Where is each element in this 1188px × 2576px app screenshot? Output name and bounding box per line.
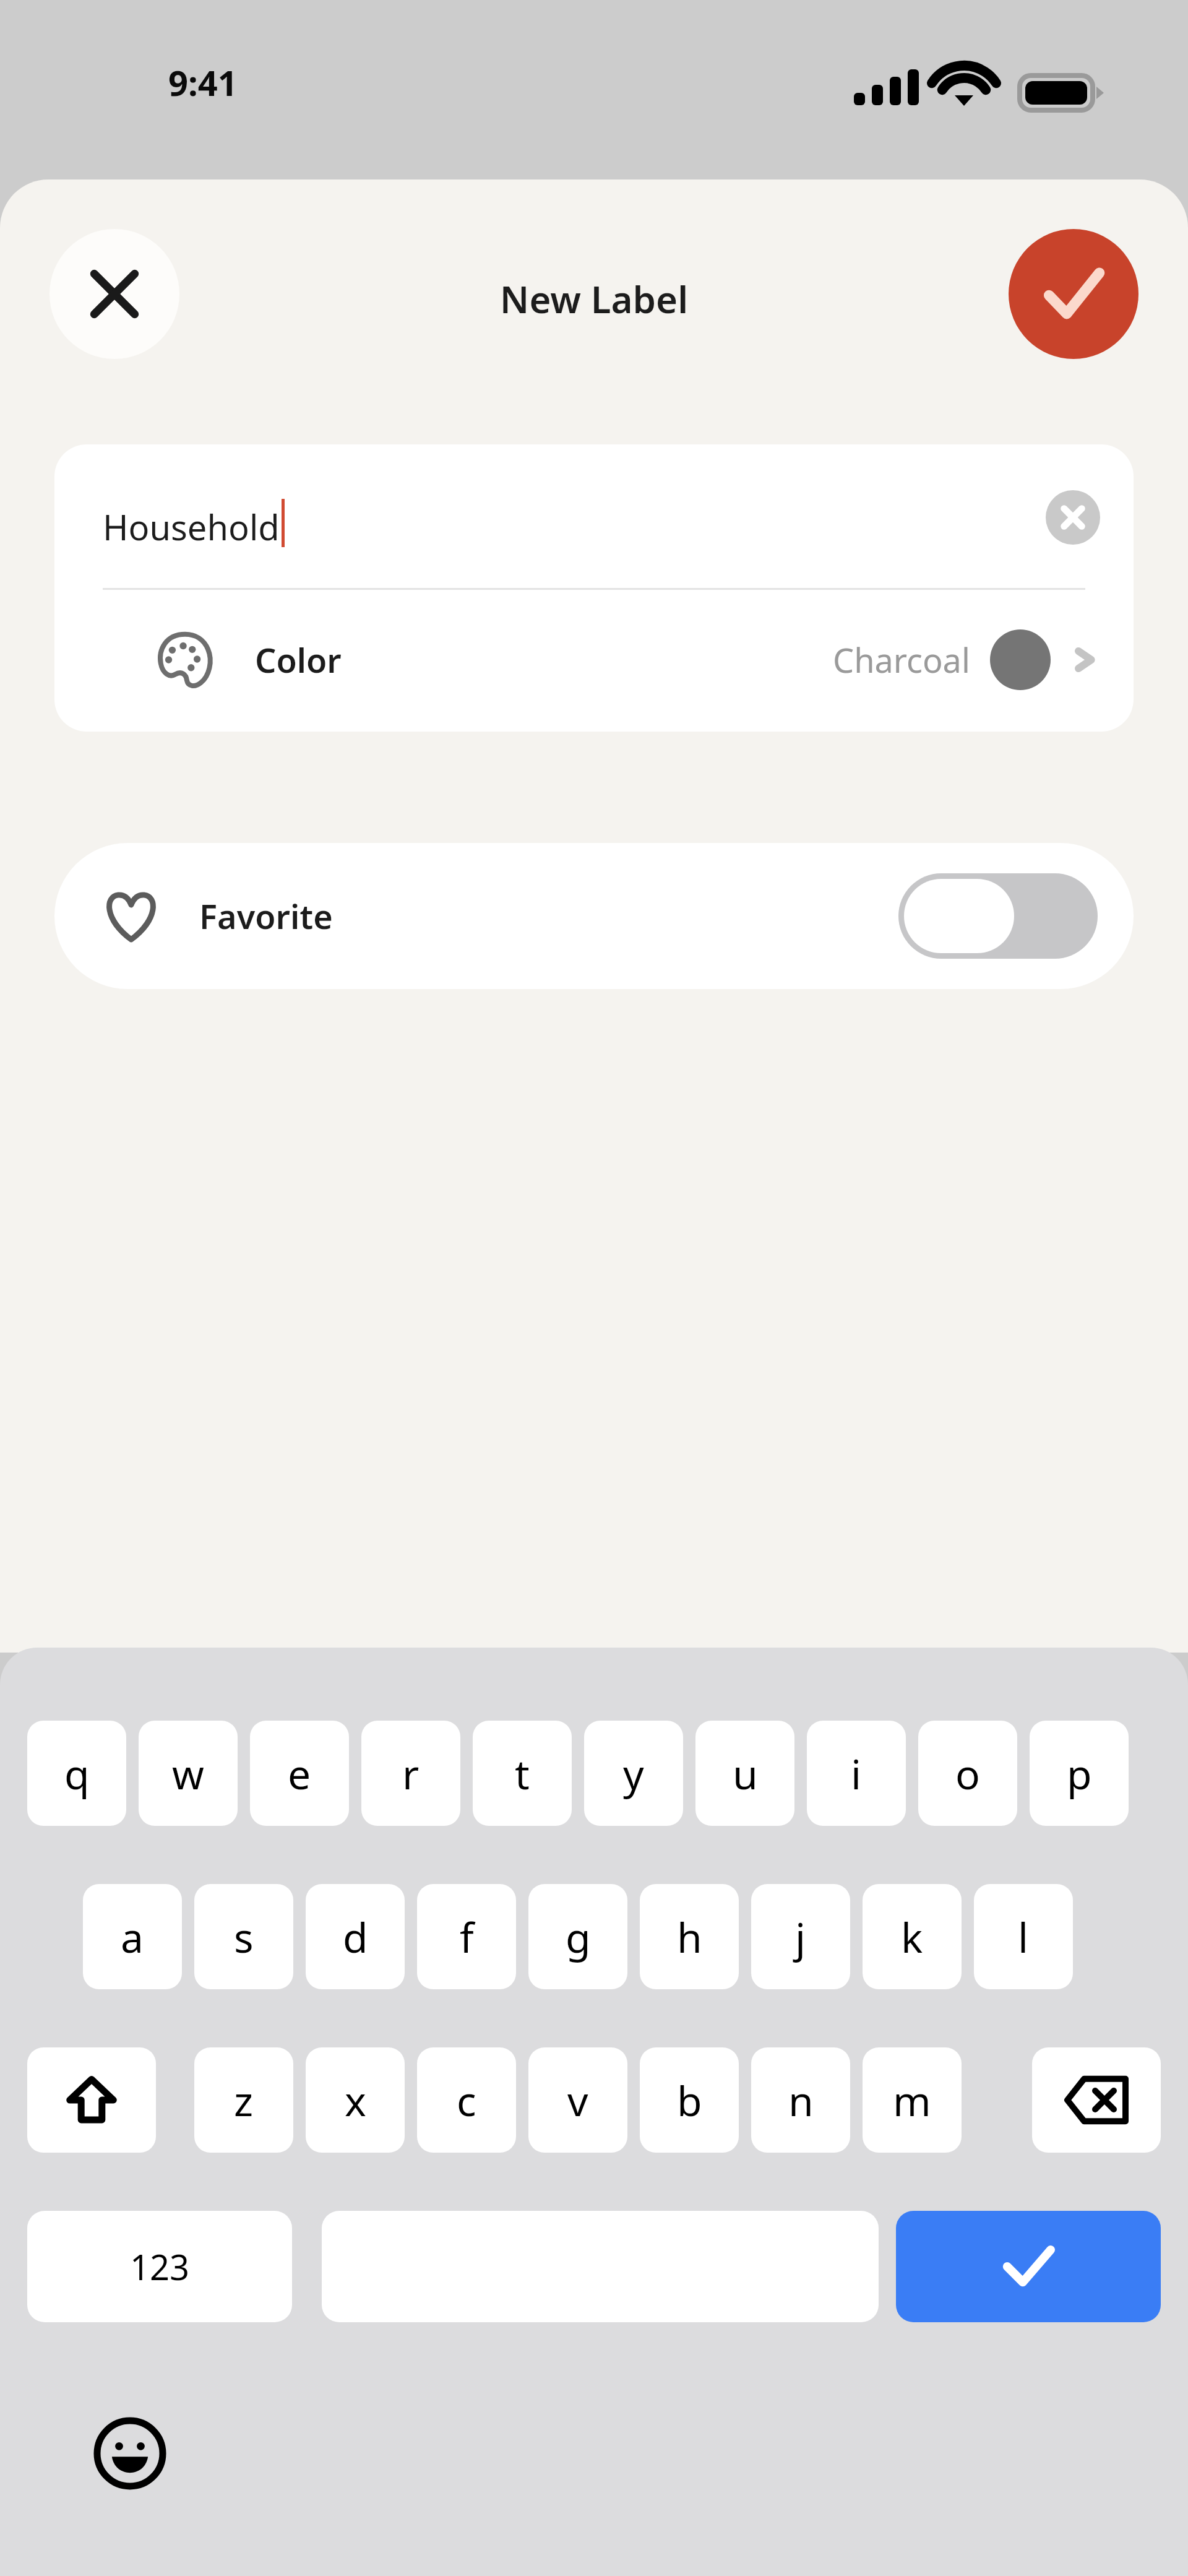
button[interactable]: Household [54, 444, 1134, 588]
button[interactable]: Emoji [92, 2415, 168, 2492]
staticText: h [677, 1909, 702, 1964]
button[interactable]: j [751, 1884, 850, 1989]
button[interactable]: f [417, 1884, 516, 1989]
staticText: q [64, 1745, 90, 1801]
button[interactable]: x [306, 2047, 405, 2153]
staticText: o [955, 1745, 980, 1801]
staticText: 123 [130, 2243, 190, 2290]
button[interactable]: Clear text [1046, 490, 1100, 545]
button[interactable]: b [640, 2047, 739, 2153]
staticText: New Label [0, 274, 1188, 324]
staticText: w [172, 1745, 204, 1801]
button[interactable]: g [528, 1884, 627, 1989]
staticText: y [623, 1745, 644, 1801]
button[interactable]: d [306, 1884, 405, 1989]
button[interactable]: Save [1009, 229, 1138, 359]
staticText: m [893, 2072, 931, 2128]
staticText: Charcoal [833, 637, 970, 683]
button[interactable]: q [27, 1721, 126, 1826]
button[interactable]: h [640, 1884, 739, 1989]
staticText: e [288, 1745, 311, 1801]
staticText: b [677, 2072, 702, 2128]
staticText: n [788, 2072, 814, 2128]
button[interactable]: m [863, 2047, 962, 2153]
staticText: u [733, 1745, 758, 1801]
button[interactable]: w [139, 1721, 238, 1826]
staticText: d [343, 1909, 368, 1964]
button[interactable]: Shift [27, 2047, 156, 2153]
staticText: l [1018, 1909, 1029, 1964]
staticText: i [851, 1745, 862, 1801]
button[interactable]: r [361, 1721, 460, 1826]
button[interactable]: e [250, 1721, 349, 1826]
staticText: g [566, 1909, 591, 1964]
button[interactable]: a [83, 1884, 182, 1989]
staticText: v [567, 2072, 588, 2128]
staticText: t [515, 1745, 530, 1801]
button[interactable]: Backspace [1032, 2047, 1161, 2153]
staticText: Favorite [199, 893, 333, 939]
button[interactable]: i [807, 1721, 906, 1826]
staticText: x [345, 2072, 366, 2128]
button[interactable]: c [417, 2047, 516, 2153]
button[interactable]: k [863, 1884, 962, 1989]
button[interactable]: Enter [896, 2211, 1161, 2322]
button[interactable]: u [695, 1721, 794, 1826]
button[interactable]: y [584, 1721, 683, 1826]
button[interactable]: Close [49, 229, 179, 359]
staticText: r [402, 1745, 420, 1801]
button[interactable]: o [918, 1721, 1017, 1826]
staticText: s [234, 1909, 254, 1964]
button[interactable]: 123 [27, 2211, 292, 2322]
button[interactable]: t [473, 1721, 572, 1826]
staticText: j [795, 1909, 806, 1964]
staticText: c [457, 2072, 476, 2128]
button[interactable]: p [1030, 1721, 1129, 1826]
staticText: a [121, 1909, 144, 1964]
button[interactable]: n [751, 2047, 850, 2153]
staticText: p [1067, 1745, 1092, 1801]
button[interactable]: s [194, 1884, 293, 1989]
button[interactable]: v [528, 2047, 627, 2153]
button[interactable]: Color [54, 588, 1134, 732]
staticText: k [901, 1909, 923, 1964]
button[interactable]: Favorite toggle [898, 873, 1098, 959]
staticText: Household [103, 503, 280, 550]
button[interactable]: Favorite [54, 843, 1134, 989]
staticText: f [460, 1909, 474, 1964]
button[interactable]: l [974, 1884, 1073, 1989]
button[interactable]: z [194, 2047, 293, 2153]
staticText: z [234, 2072, 254, 2128]
staticText: 9:41 [168, 59, 238, 106]
staticText: Color [255, 637, 342, 683]
